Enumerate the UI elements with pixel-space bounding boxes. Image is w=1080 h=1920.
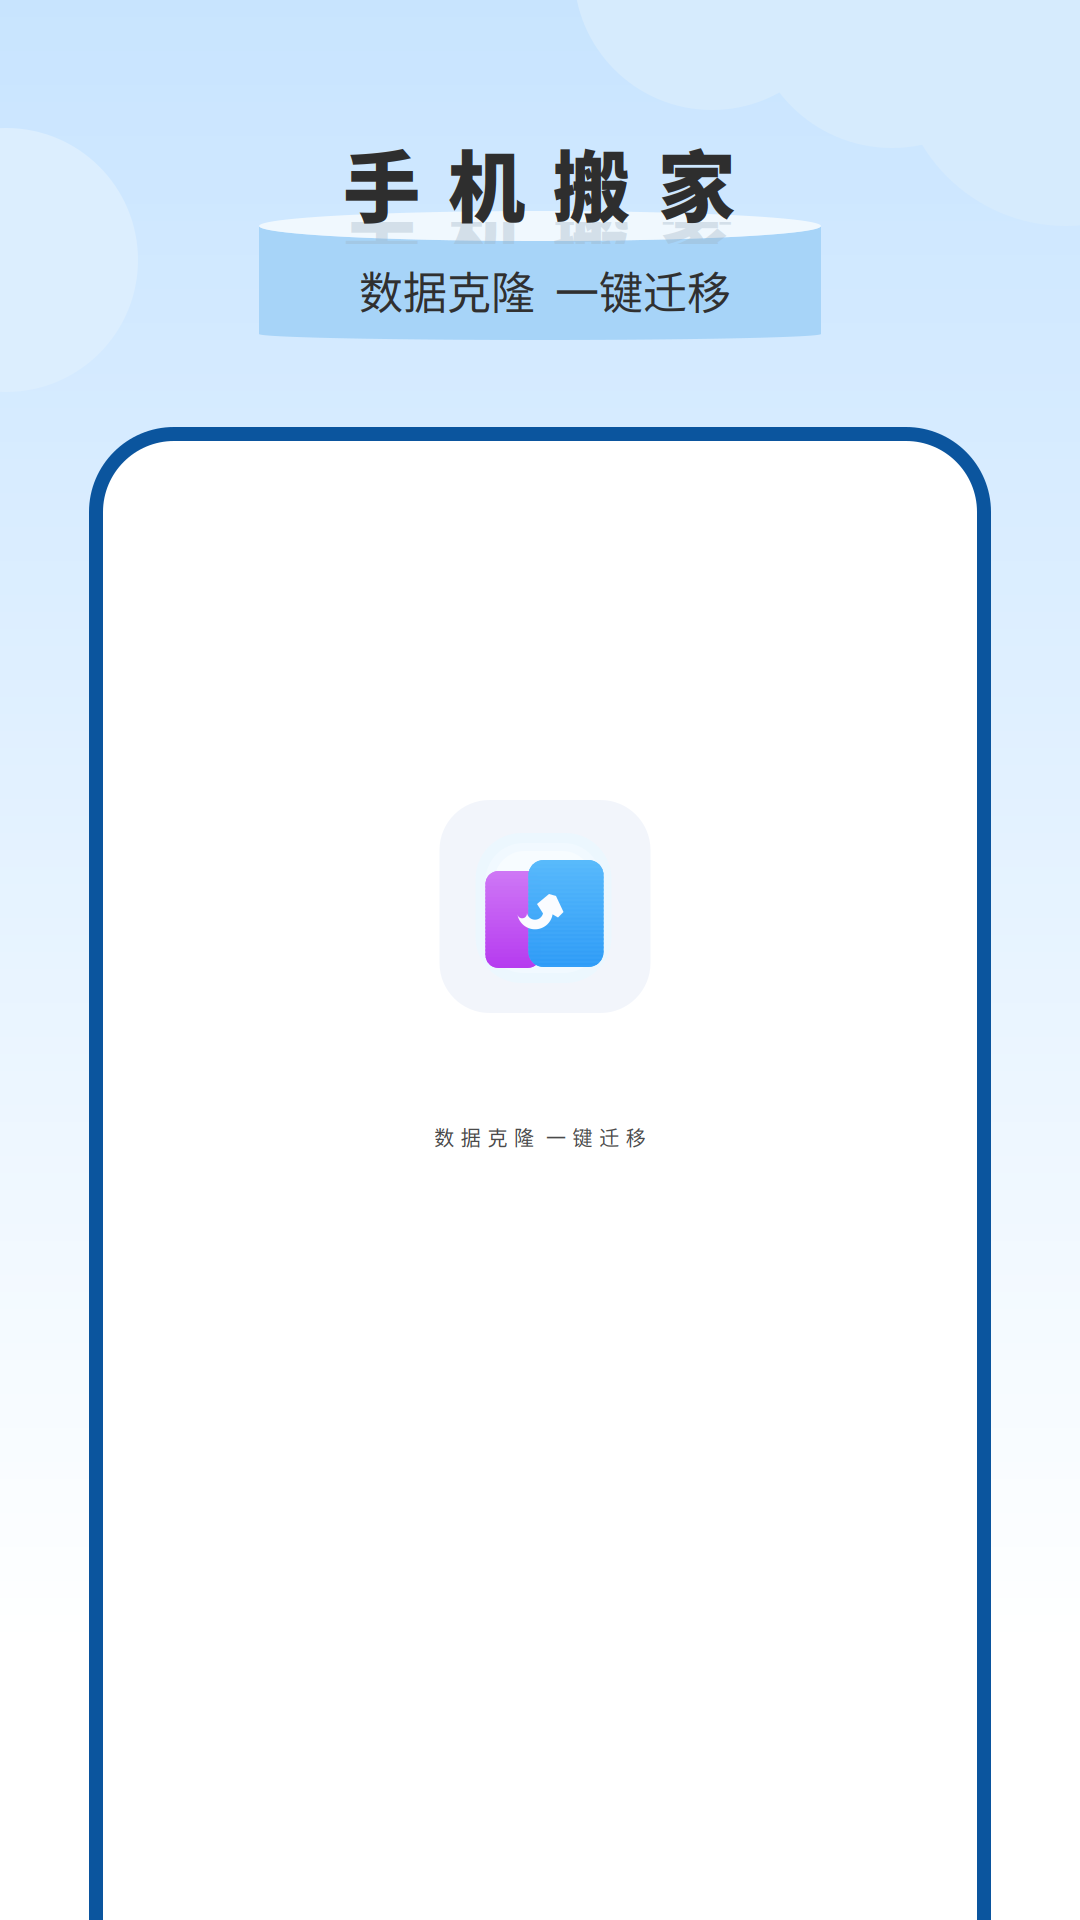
- staticText: 手机搬家: [343, 126, 735, 238]
- staticText: 数据克隆 一键迁移: [359, 258, 731, 322]
- staticText: 手机搬家: [343, 177, 735, 289]
- staticText: 数 据 克 隆 一 键 迁 移: [434, 1122, 646, 1151]
